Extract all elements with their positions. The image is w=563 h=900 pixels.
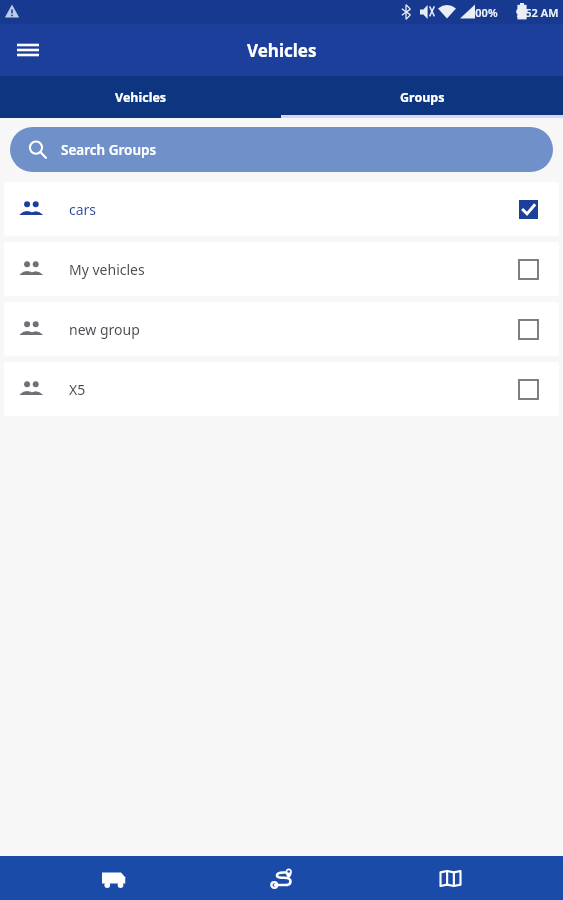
staticText: Groups <box>400 89 445 106</box>
button[interactable]: Search Groups <box>10 127 553 172</box>
button[interactable]: Map <box>395 856 505 900</box>
staticText: Search Groups <box>61 141 157 159</box>
staticText: cars <box>69 200 97 219</box>
button[interactable]: Open navigation menu <box>8 30 48 70</box>
staticText: My vehicles <box>69 260 145 279</box>
button[interactable]: Select new group <box>513 314 543 344</box>
button[interactable]: X5 <box>4 362 559 416</box>
button[interactable]: Groups <box>281 76 563 118</box>
button[interactable]: Vehicles <box>0 76 281 118</box>
button[interactable]: Select My vehicles <box>513 254 543 284</box>
staticText: X5 <box>69 380 86 399</box>
staticText: 100% <box>469 5 498 20</box>
button[interactable]: Select X5 <box>513 374 543 404</box>
button[interactable]: cars <box>4 182 559 236</box>
button[interactable]: new group <box>4 302 559 356</box>
button[interactable]: Vehicles <box>58 856 168 900</box>
staticText: 9:52 AM <box>516 5 559 20</box>
staticText: Vehicles <box>247 39 317 62</box>
staticText: new group <box>69 320 140 339</box>
button[interactable]: Deselect cars <box>513 194 543 224</box>
staticText: Vehicles <box>115 89 167 106</box>
button[interactable]: Trips <box>227 856 337 900</box>
button[interactable]: My vehicles <box>4 242 559 296</box>
